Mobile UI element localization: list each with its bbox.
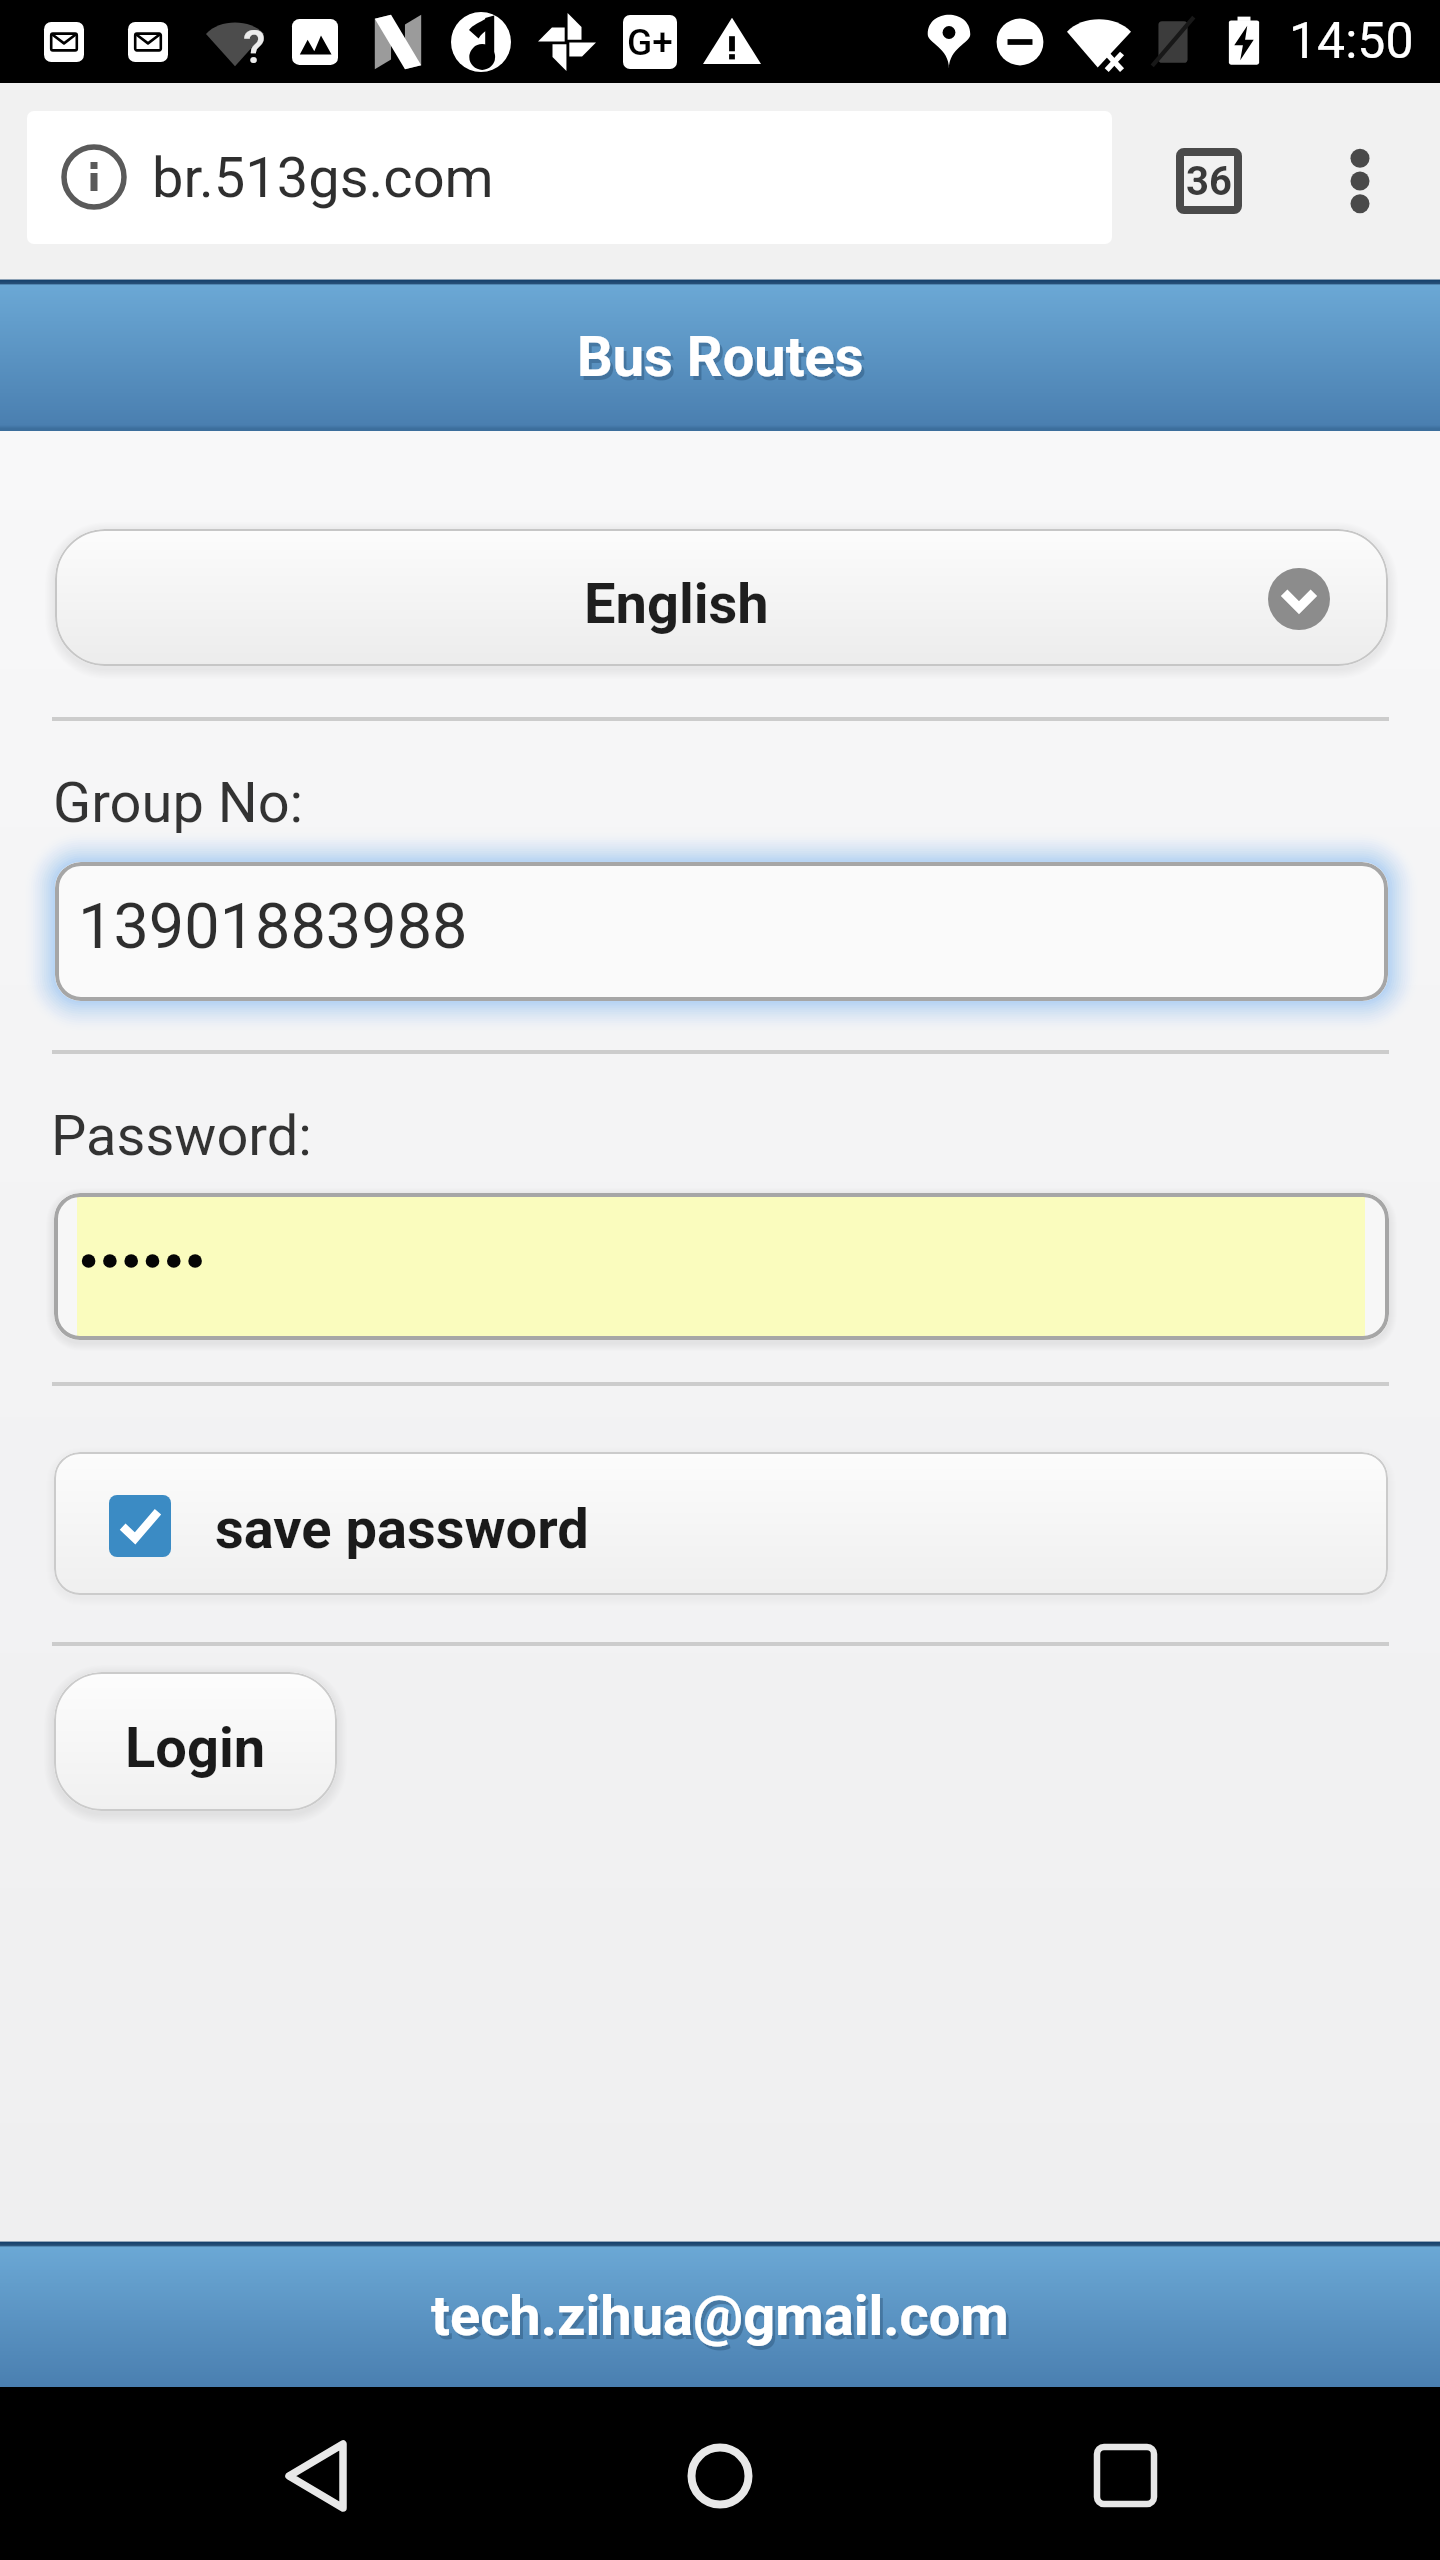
- button[interactable]: Tabs: [1145, 117, 1273, 245]
- button[interactable]: 13901883988: [55, 862, 1388, 1001]
- button[interactable]: [54, 1193, 1389, 1340]
- staticText: 36: [1186, 158, 1232, 205]
- staticText: 13901883988: [78, 890, 468, 964]
- staticText: tech.zihua@gmail.com: [434, 2287, 1012, 2353]
- staticText: Group No:: [53, 770, 304, 836]
- button[interactable]: save password: [54, 1452, 1388, 1595]
- button[interactable]: Login: [54, 1672, 337, 1811]
- staticText: 14:50: [1289, 12, 1414, 71]
- button[interactable]: Recents: [1046, 2396, 1206, 2556]
- staticText: G+: [627, 21, 673, 64]
- button[interactable]: Home: [640, 2396, 800, 2556]
- staticText: ?: [243, 20, 266, 72]
- staticText: Login: [125, 1715, 266, 1781]
- button[interactable]: More options: [1296, 117, 1424, 245]
- staticText: Bus Routes: [580, 328, 867, 394]
- staticText: tech.zihua@gmail.com: [431, 2283, 1009, 2349]
- staticText: br.513gs.com: [152, 145, 494, 211]
- button[interactable]: br.513gs.com: [27, 111, 1112, 244]
- button[interactable]: tech.zihua@gmail.com: [431, 2283, 1009, 2349]
- button[interactable]: Back: [236, 2396, 396, 2556]
- staticText: Bus Routes: [577, 324, 864, 390]
- button[interactable]: Language: English: [55, 529, 1388, 666]
- staticText: English: [584, 571, 769, 637]
- staticText: save password: [215, 1496, 589, 1562]
- staticText: Password:: [51, 1103, 312, 1169]
